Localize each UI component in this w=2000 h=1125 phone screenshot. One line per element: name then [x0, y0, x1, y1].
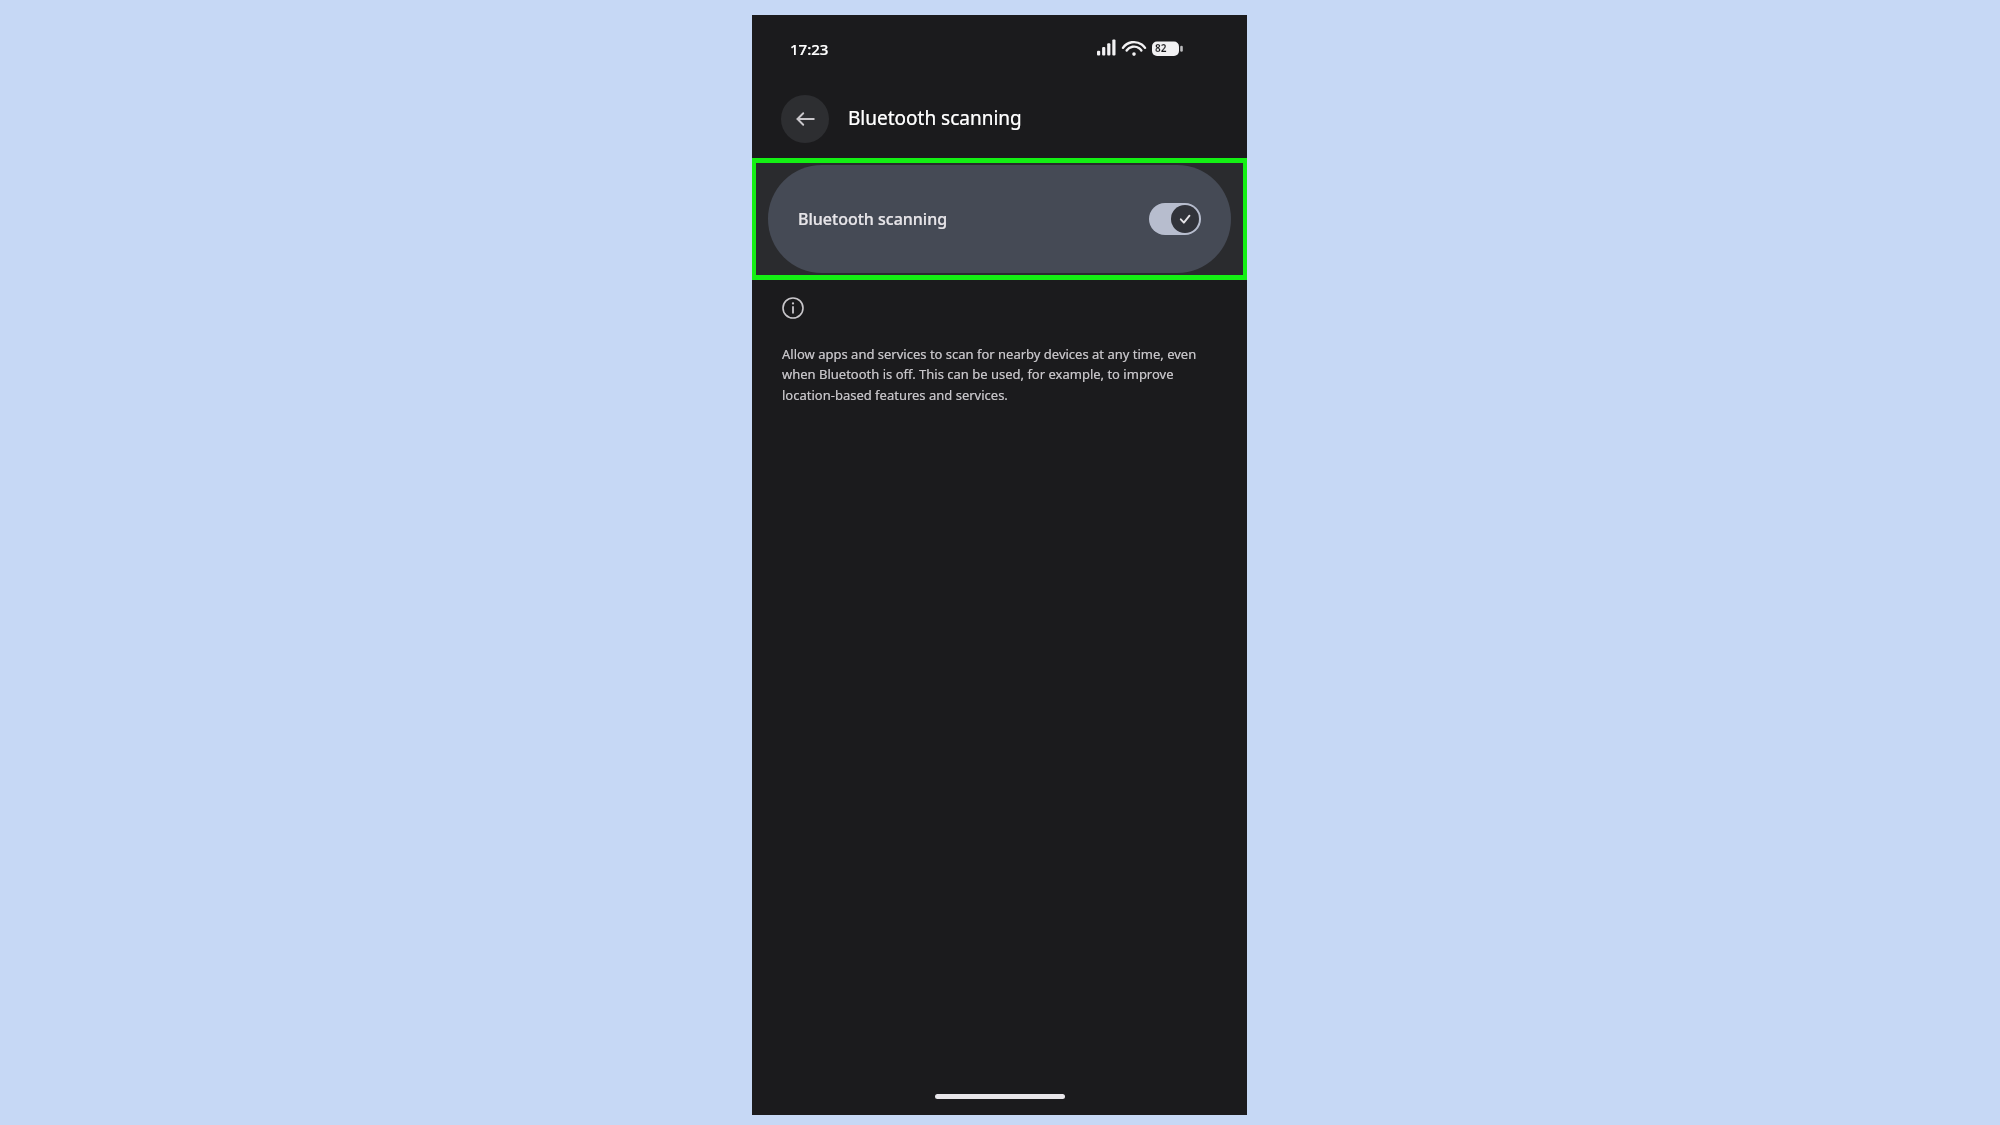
staticText: Allow apps and services to scan for near… [782, 345, 1209, 404]
staticText: Bluetooth scanning [798, 208, 1149, 230]
staticText: Bluetooth scanning [848, 105, 1022, 131]
button[interactable]: Back [781, 95, 829, 143]
staticText: 82 [1155, 41, 1167, 55]
button[interactable]: Bluetooth scanning [768, 165, 1231, 273]
button[interactable]: Bluetooth scanning toggle, on [1149, 203, 1201, 235]
staticText: 17:23 [790, 39, 829, 59]
